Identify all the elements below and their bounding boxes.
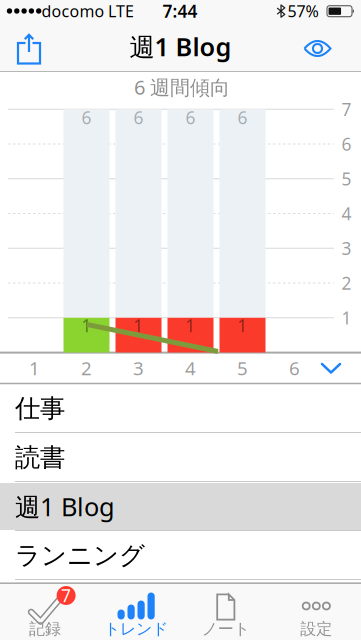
staticText: 6 [289, 356, 300, 380]
button[interactable]: Toggle visibility [302, 32, 332, 65]
staticText: 6 [341, 132, 351, 155]
staticText: 6 [237, 106, 247, 129]
staticText: 1 [81, 314, 91, 337]
staticText: 6 [133, 106, 143, 129]
staticText: 仕事 [15, 393, 65, 424]
staticText: 3 [133, 356, 144, 380]
staticText: 57% [287, 0, 318, 22]
staticText: 7 [341, 98, 351, 121]
staticText: 週1 Blog [15, 490, 115, 523]
staticText: 7 [61, 584, 71, 607]
staticText: 読書 [15, 442, 65, 473]
staticText: 5 [341, 167, 351, 190]
staticText: 6 週間傾向 [134, 74, 230, 100]
staticText: 6 [185, 106, 195, 129]
staticText: 1 [341, 306, 351, 329]
staticText: ノート [202, 619, 250, 639]
button[interactable]: ランニング [0, 532, 361, 579]
staticText: docomo [41, 0, 104, 22]
staticText: 1 [237, 314, 247, 337]
staticText: 4 [341, 202, 351, 225]
staticText: トレンド [104, 619, 168, 639]
button[interactable]: 設定 [271, 584, 361, 640]
staticText: 6 [81, 106, 91, 129]
button[interactable]: 週1 Blog [0, 483, 361, 530]
staticText: 3 [341, 237, 351, 260]
staticText: 週1 Blog [129, 30, 231, 63]
staticText: 7:44 [162, 0, 197, 22]
button[interactable]: トレンド [90, 584, 180, 640]
button[interactable]: 7 [0, 584, 90, 640]
staticText: 2 [341, 271, 351, 294]
staticText: 5 [237, 356, 248, 380]
staticText: 1 [29, 356, 40, 380]
button[interactable]: Share [14, 25, 44, 69]
staticText: ランニング [15, 540, 145, 571]
staticText: 1 [185, 314, 195, 337]
staticText: 4 [185, 356, 196, 380]
staticText: 記録 [29, 619, 61, 639]
staticText: LTE [108, 0, 134, 22]
button[interactable]: Expand chart [316, 356, 346, 380]
button[interactable]: 読書 [0, 434, 361, 481]
button[interactable]: ノート [181, 584, 271, 640]
button[interactable]: 仕事 [0, 385, 361, 432]
staticText: 1 [133, 314, 143, 337]
staticText: 2 [81, 356, 92, 380]
staticText: 設定 [300, 619, 332, 639]
